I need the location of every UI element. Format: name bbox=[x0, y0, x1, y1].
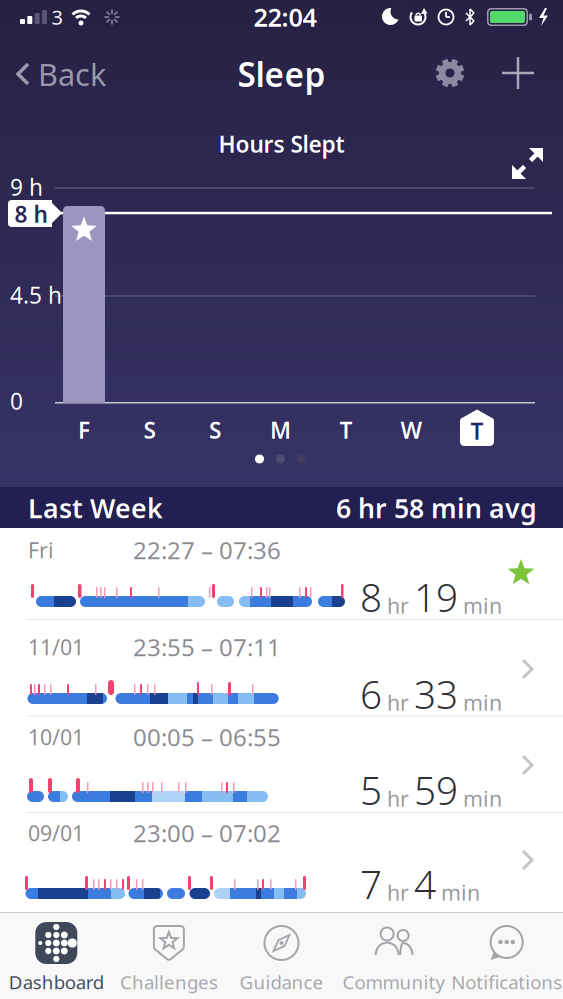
staticText: Last Week bbox=[28, 490, 163, 526]
staticText: 3 bbox=[51, 4, 62, 30]
staticText: hr bbox=[387, 591, 409, 620]
button[interactable] bbox=[501, 56, 535, 90]
staticText: Sleep bbox=[237, 52, 325, 96]
staticText: Back bbox=[38, 54, 106, 94]
staticText: T bbox=[339, 415, 352, 445]
staticText: hr bbox=[387, 688, 409, 717]
button[interactable]: Notifications bbox=[450, 912, 563, 999]
staticText: Community bbox=[343, 970, 446, 994]
staticText: min bbox=[463, 591, 502, 620]
staticText: Guidance bbox=[239, 970, 323, 994]
staticText: 00:05 – 06:55 bbox=[133, 721, 281, 753]
staticText: Hours Slept bbox=[218, 129, 344, 159]
button[interactable]: Community bbox=[338, 912, 450, 999]
staticText: S bbox=[143, 415, 155, 445]
button[interactable]: Dashboard bbox=[0, 912, 113, 999]
staticText: 4.5 h bbox=[10, 280, 62, 310]
button[interactable] bbox=[430, 53, 470, 93]
staticText: 23:00 – 07:02 bbox=[133, 817, 281, 849]
button[interactable]: Back bbox=[16, 52, 126, 96]
staticText: 22:27 – 07:36 bbox=[133, 534, 281, 566]
staticText: 9 h bbox=[10, 172, 43, 202]
staticText: 59 bbox=[414, 764, 458, 816]
staticText: min bbox=[463, 688, 502, 717]
button[interactable]: Fri bbox=[0, 528, 563, 620]
staticText: Fri bbox=[28, 536, 54, 564]
staticText: min bbox=[463, 784, 502, 813]
button[interactable] bbox=[512, 147, 544, 180]
staticText: F bbox=[78, 415, 90, 445]
staticText: 7 bbox=[360, 858, 382, 910]
staticText: 11/01 bbox=[28, 633, 84, 661]
staticText: 6 bbox=[360, 668, 382, 720]
staticText: 6 hr 58 min avg bbox=[336, 490, 537, 526]
staticText: M bbox=[270, 415, 291, 445]
button[interactable] bbox=[63, 206, 105, 403]
staticText: T bbox=[470, 416, 483, 446]
button[interactable]: 11/01 bbox=[0, 620, 563, 716]
staticText: Challenges bbox=[120, 970, 218, 994]
staticText: hr bbox=[387, 784, 409, 813]
staticText: 19 bbox=[414, 571, 458, 623]
staticText: 33 bbox=[414, 668, 458, 720]
staticText: Notifications bbox=[451, 970, 562, 994]
staticText: 22:04 bbox=[253, 0, 316, 34]
button[interactable]: Guidance bbox=[225, 912, 338, 999]
staticText: 0 bbox=[10, 386, 23, 416]
staticText: 23:55 – 07:11 bbox=[133, 631, 281, 663]
button[interactable]: Challenges bbox=[113, 912, 225, 999]
staticText: 4 bbox=[414, 858, 436, 910]
staticText: 09/01 bbox=[28, 819, 84, 847]
staticText: S bbox=[209, 415, 221, 445]
staticText: 8 bbox=[360, 571, 382, 623]
staticText: Dashboard bbox=[9, 970, 104, 994]
staticText: 5 bbox=[360, 764, 382, 816]
staticText: 8 h bbox=[14, 199, 47, 229]
staticText: min bbox=[441, 878, 480, 907]
staticText: W bbox=[400, 415, 422, 445]
staticText: 10/01 bbox=[28, 723, 84, 751]
staticText: hr bbox=[387, 878, 409, 907]
button[interactable]: 09/01 bbox=[0, 813, 563, 912]
button[interactable]: 10/01 bbox=[0, 716, 563, 813]
